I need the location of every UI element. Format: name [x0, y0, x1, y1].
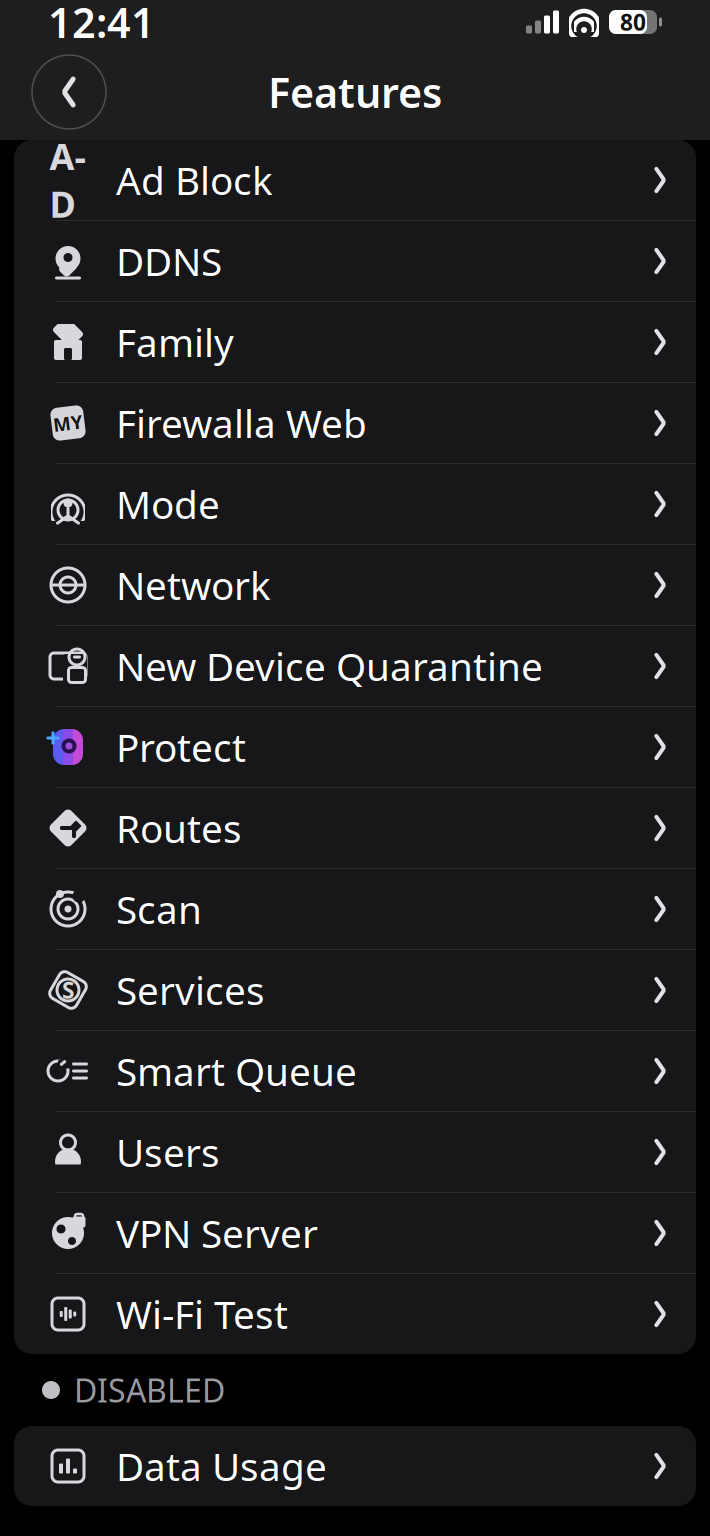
button[interactable]: DDNS	[14, 221, 696, 302]
staticText: DISABLED	[74, 1369, 225, 1411]
staticText: VPN Server	[116, 1207, 318, 1259]
staticText: Services	[116, 964, 265, 1016]
staticText: Family	[116, 316, 234, 368]
button[interactable]: Family	[14, 302, 696, 383]
staticText: Ad Block	[116, 154, 273, 206]
staticText: AD	[49, 132, 86, 228]
button[interactable]: Mode	[14, 464, 696, 545]
button[interactable]: Routes	[14, 788, 696, 869]
staticText: Scan	[116, 883, 202, 935]
button[interactable]: Data Usage	[14, 1426, 696, 1506]
button[interactable]: Smart Queue	[14, 1031, 696, 1112]
button[interactable]: Network	[14, 545, 696, 626]
button[interactable]: Back	[30, 53, 108, 131]
button[interactable]: VPN Server	[14, 1193, 696, 1274]
staticText: Wi-Fi Test	[116, 1288, 288, 1340]
staticText: New Device Quarantine	[116, 640, 543, 692]
button[interactable]: Protect	[14, 707, 696, 788]
button[interactable]: Wi-Fi Test	[14, 1274, 696, 1354]
staticText: Firewalla Web	[116, 397, 367, 449]
staticText: Features	[268, 65, 442, 119]
button[interactable]: S	[14, 950, 696, 1031]
staticText: Routes	[116, 802, 242, 854]
staticText: Data Usage	[116, 1440, 327, 1492]
staticText: Users	[116, 1126, 220, 1178]
button[interactable]: Scan	[14, 869, 696, 950]
staticText: S	[62, 975, 74, 1005]
staticText: Network	[116, 559, 271, 611]
staticText: Mode	[116, 478, 220, 530]
staticText: 12:41	[48, 0, 155, 49]
staticText: MY	[53, 411, 83, 435]
staticText: DDNS	[116, 235, 222, 287]
staticText: 80	[620, 7, 646, 37]
button[interactable]: MY	[14, 383, 696, 464]
staticText: Smart Queue	[116, 1045, 357, 1097]
button[interactable]: AD	[14, 140, 696, 221]
staticText: Protect	[116, 721, 246, 773]
button[interactable]: New Device Quarantine	[14, 626, 696, 707]
button[interactable]: Users	[14, 1112, 696, 1193]
